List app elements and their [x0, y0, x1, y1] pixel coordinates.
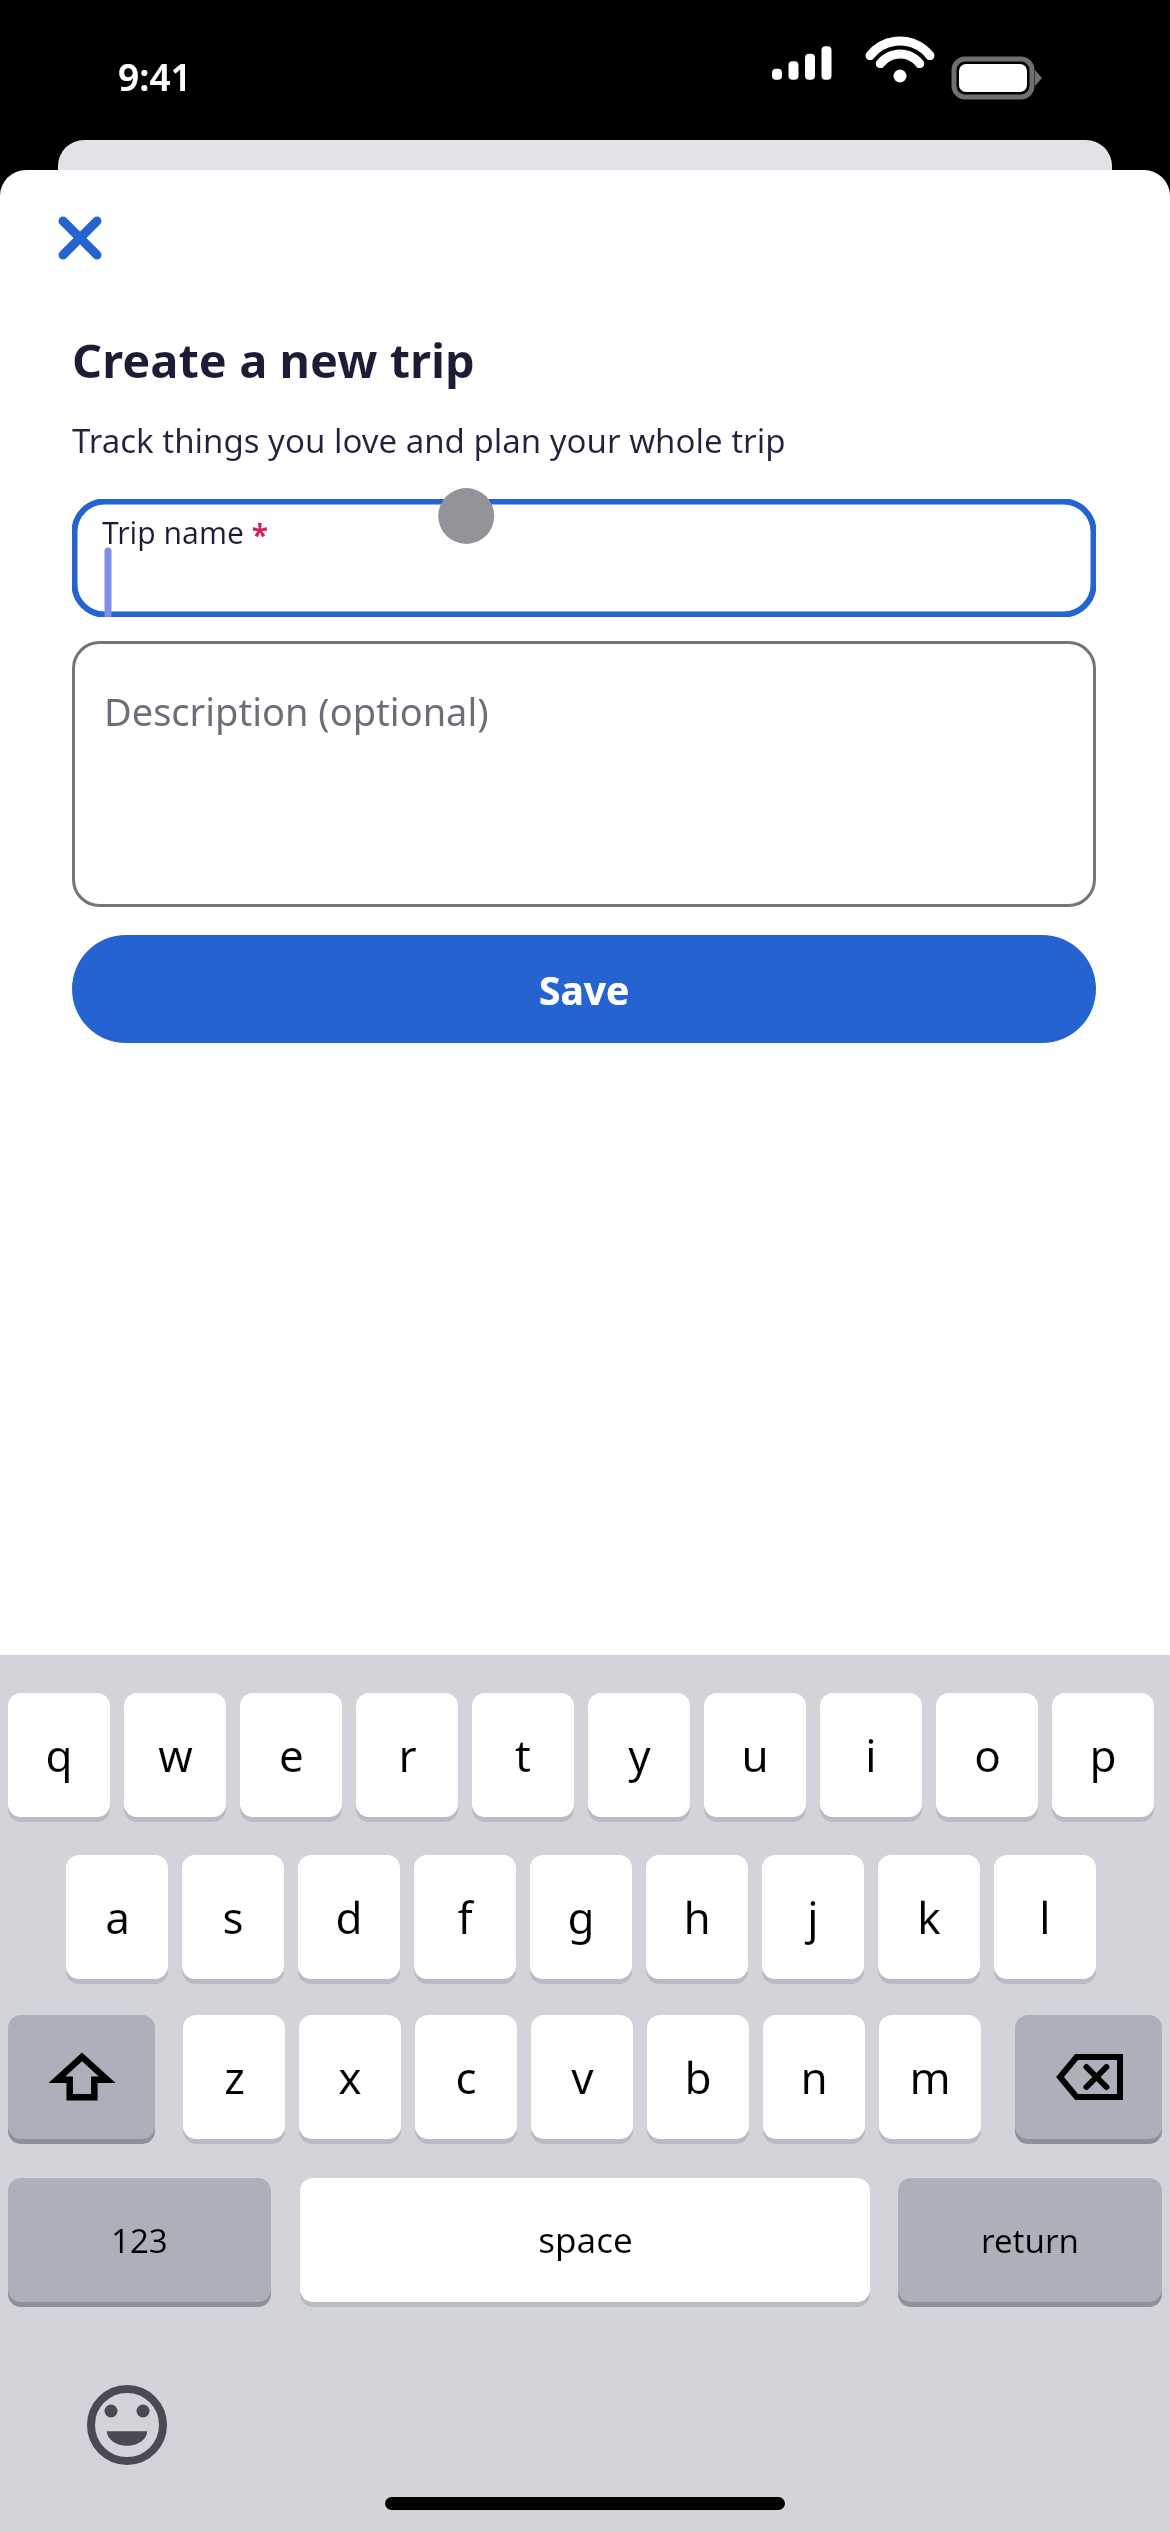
staticText: *	[244, 514, 269, 555]
staticText: 123	[111, 2218, 168, 2263]
button[interactable]: x	[299, 2015, 401, 2144]
button[interactable]: Description (optional)	[72, 641, 1096, 907]
staticText: space	[538, 2216, 633, 2264]
staticText: z	[224, 2047, 245, 2107]
button[interactable]: z	[183, 2015, 285, 2144]
button[interactable]: space	[300, 2178, 870, 2307]
staticText: f	[457, 1887, 473, 1947]
staticText: Track things you love and plan your whol…	[72, 418, 786, 463]
button[interactable]: g	[530, 1855, 632, 1984]
staticText: Save	[539, 963, 630, 1016]
staticText: x	[338, 2047, 362, 2107]
button[interactable]: s	[182, 1855, 284, 1984]
staticText: r	[398, 1725, 417, 1785]
staticText: u	[741, 1725, 769, 1785]
button[interactable]: k	[878, 1855, 980, 1984]
staticText: 9:41	[118, 51, 192, 101]
staticText: t	[515, 1725, 531, 1785]
button[interactable]: e	[240, 1693, 342, 1822]
button[interactable]: a	[66, 1855, 168, 1984]
button[interactable]: o	[936, 1693, 1038, 1822]
staticText: e	[279, 1725, 304, 1785]
button[interactable]: y	[588, 1693, 690, 1822]
button[interactable]: 123	[8, 2178, 271, 2307]
staticText: b	[684, 2047, 712, 2107]
button[interactable]: Emoji	[72, 2370, 182, 2480]
staticText: n	[800, 2047, 828, 2107]
staticText: h	[683, 1887, 711, 1947]
staticText: y	[628, 1725, 651, 1785]
button[interactable]: r	[356, 1693, 458, 1822]
button[interactable]: n	[763, 2015, 865, 2144]
staticText: d	[335, 1887, 363, 1947]
button[interactable]: f	[414, 1855, 516, 1984]
staticText: l	[1039, 1887, 1051, 1947]
button[interactable]: w	[124, 1693, 226, 1822]
button[interactable]: b	[647, 2015, 749, 2144]
button[interactable]: u	[704, 1693, 806, 1822]
button[interactable]: l	[994, 1855, 1096, 1984]
staticText: return	[981, 2218, 1079, 2263]
button[interactable]: v	[531, 2015, 633, 2144]
button[interactable]: Save	[72, 935, 1096, 1043]
button[interactable]: t	[472, 1693, 574, 1822]
staticText: j	[807, 1887, 819, 1947]
staticText: Description (optional)	[104, 685, 489, 737]
button[interactable]: p	[1052, 1693, 1154, 1822]
staticText: c	[455, 2047, 477, 2107]
button[interactable]: Trip name	[72, 499, 1096, 617]
staticText: v	[571, 2047, 594, 2107]
staticText: a	[105, 1887, 130, 1947]
button[interactable]: d	[298, 1855, 400, 1984]
button[interactable]: q	[8, 1693, 110, 1822]
button[interactable]: i	[820, 1693, 922, 1822]
button[interactable]: Backspace	[1015, 2015, 1162, 2144]
staticText: Create a new trip	[72, 328, 475, 392]
button[interactable]: j	[762, 1855, 864, 1984]
button[interactable]: h	[646, 1855, 748, 1984]
staticText: i	[865, 1725, 877, 1785]
staticText: s	[222, 1887, 244, 1947]
button[interactable]: m	[879, 2015, 981, 2144]
staticText: q	[45, 1725, 73, 1785]
staticText: o	[974, 1725, 1001, 1785]
staticText: g	[567, 1887, 595, 1947]
staticText: p	[1089, 1725, 1117, 1785]
staticText: w	[158, 1725, 193, 1785]
button[interactable]: Shift	[8, 2015, 155, 2144]
button[interactable]: Close	[42, 200, 118, 276]
button[interactable]: return	[898, 2178, 1162, 2307]
staticText: k	[917, 1887, 941, 1947]
staticText: Trip name	[102, 512, 244, 553]
staticText: m	[909, 2047, 951, 2107]
button[interactable]: c	[415, 2015, 517, 2144]
